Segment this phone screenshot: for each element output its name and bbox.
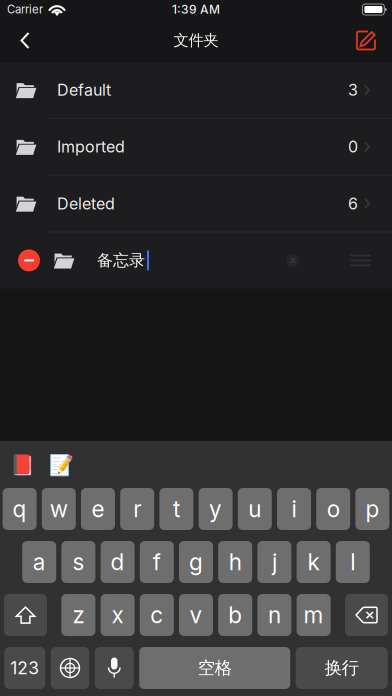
staticText: 6 — [348, 194, 358, 213]
staticText: 0 — [348, 137, 358, 156]
staticText: 123 — [10, 657, 39, 678]
button[interactable]: z — [61, 594, 95, 636]
button[interactable]: b — [218, 594, 252, 636]
staticText: x — [112, 601, 124, 629]
staticText: Carrier — [7, 3, 43, 16]
button[interactable]: Book — [13, 452, 31, 478]
button[interactable]: i — [277, 488, 311, 530]
button[interactable]: o — [316, 488, 350, 530]
staticText: f — [153, 548, 161, 576]
button[interactable]: Imported — [0, 119, 392, 175]
staticText: u — [248, 495, 261, 523]
staticText: d — [111, 548, 125, 576]
button[interactable]: h — [218, 541, 252, 583]
button[interactable]: Default — [0, 62, 392, 118]
button[interactable]: Deleted — [0, 176, 392, 232]
button[interactable]: g — [179, 541, 213, 583]
button[interactable]: 空格 — [139, 647, 290, 689]
button[interactable]: p — [355, 488, 389, 530]
button[interactable]: s — [61, 541, 95, 583]
staticText: 备忘录 — [97, 250, 145, 270]
button[interactable]: Reorder — [350, 247, 371, 273]
button[interactable]: w — [42, 488, 76, 530]
staticText: Imported — [57, 137, 125, 156]
staticText: 3 — [348, 80, 358, 100]
staticText: 📕 — [9, 453, 34, 477]
staticText: 空格 — [198, 657, 232, 679]
button[interactable]: l — [336, 541, 370, 583]
staticText: n — [268, 601, 281, 629]
staticText: g — [189, 548, 203, 576]
staticText: a — [33, 548, 46, 576]
button[interactable]: x — [101, 594, 135, 636]
button[interactable]: q — [3, 488, 37, 530]
button[interactable]: u — [238, 488, 272, 530]
button[interactable]: v — [179, 594, 213, 636]
staticText: e — [91, 495, 104, 523]
button[interactable]: Next keyboard — [51, 647, 89, 689]
staticText: w — [50, 495, 68, 523]
staticText: k — [308, 548, 320, 576]
button[interactable]: Memo — [52, 452, 70, 478]
staticText: v — [189, 601, 202, 629]
staticText: i — [291, 495, 296, 523]
button[interactable]: Delete 备忘录 — [18, 238, 40, 282]
staticText: 📝 — [48, 453, 73, 477]
staticText: Deleted — [57, 194, 115, 213]
button[interactable]: 123 — [4, 647, 45, 689]
staticText: c — [150, 601, 163, 629]
staticText: o — [327, 495, 340, 523]
button[interactable]: r — [120, 488, 154, 530]
staticText: z — [72, 601, 84, 629]
button[interactable]: m — [297, 594, 331, 636]
button[interactable]: Clear text — [283, 247, 303, 273]
button[interactable]: Back — [5, 22, 45, 58]
staticText: r — [133, 495, 141, 523]
button[interactable]: k — [297, 541, 331, 583]
button[interactable]: Dictation — [95, 647, 134, 689]
button[interactable]: e — [81, 488, 115, 530]
button[interactable]: n — [257, 594, 291, 636]
button[interactable]: c — [140, 594, 174, 636]
button[interactable]: y — [199, 488, 233, 530]
staticText: 换行 — [325, 657, 359, 679]
staticText: y — [209, 495, 222, 523]
staticText: Default — [57, 80, 111, 100]
button[interactable]: f — [140, 541, 174, 583]
staticText: t — [173, 495, 180, 523]
staticText: h — [229, 548, 242, 576]
staticText: b — [228, 601, 242, 629]
button[interactable]: t — [159, 488, 193, 530]
button[interactable]: j — [257, 541, 291, 583]
button[interactable]: Shift — [4, 594, 47, 636]
staticText: j — [272, 548, 277, 576]
staticText: 文件夹 — [173, 31, 218, 50]
staticText: l — [350, 548, 355, 576]
button[interactable]: a — [22, 541, 56, 583]
button[interactable]: Delete — [345, 594, 388, 636]
button[interactable]: 换行 — [296, 647, 388, 689]
staticText: q — [13, 495, 27, 523]
staticText: p — [365, 495, 379, 523]
staticText: 1:39 AM — [172, 2, 220, 17]
staticText: s — [72, 548, 84, 576]
button[interactable]: d — [101, 541, 135, 583]
button[interactable]: New Folder — [348, 22, 384, 58]
staticText: m — [304, 601, 324, 629]
